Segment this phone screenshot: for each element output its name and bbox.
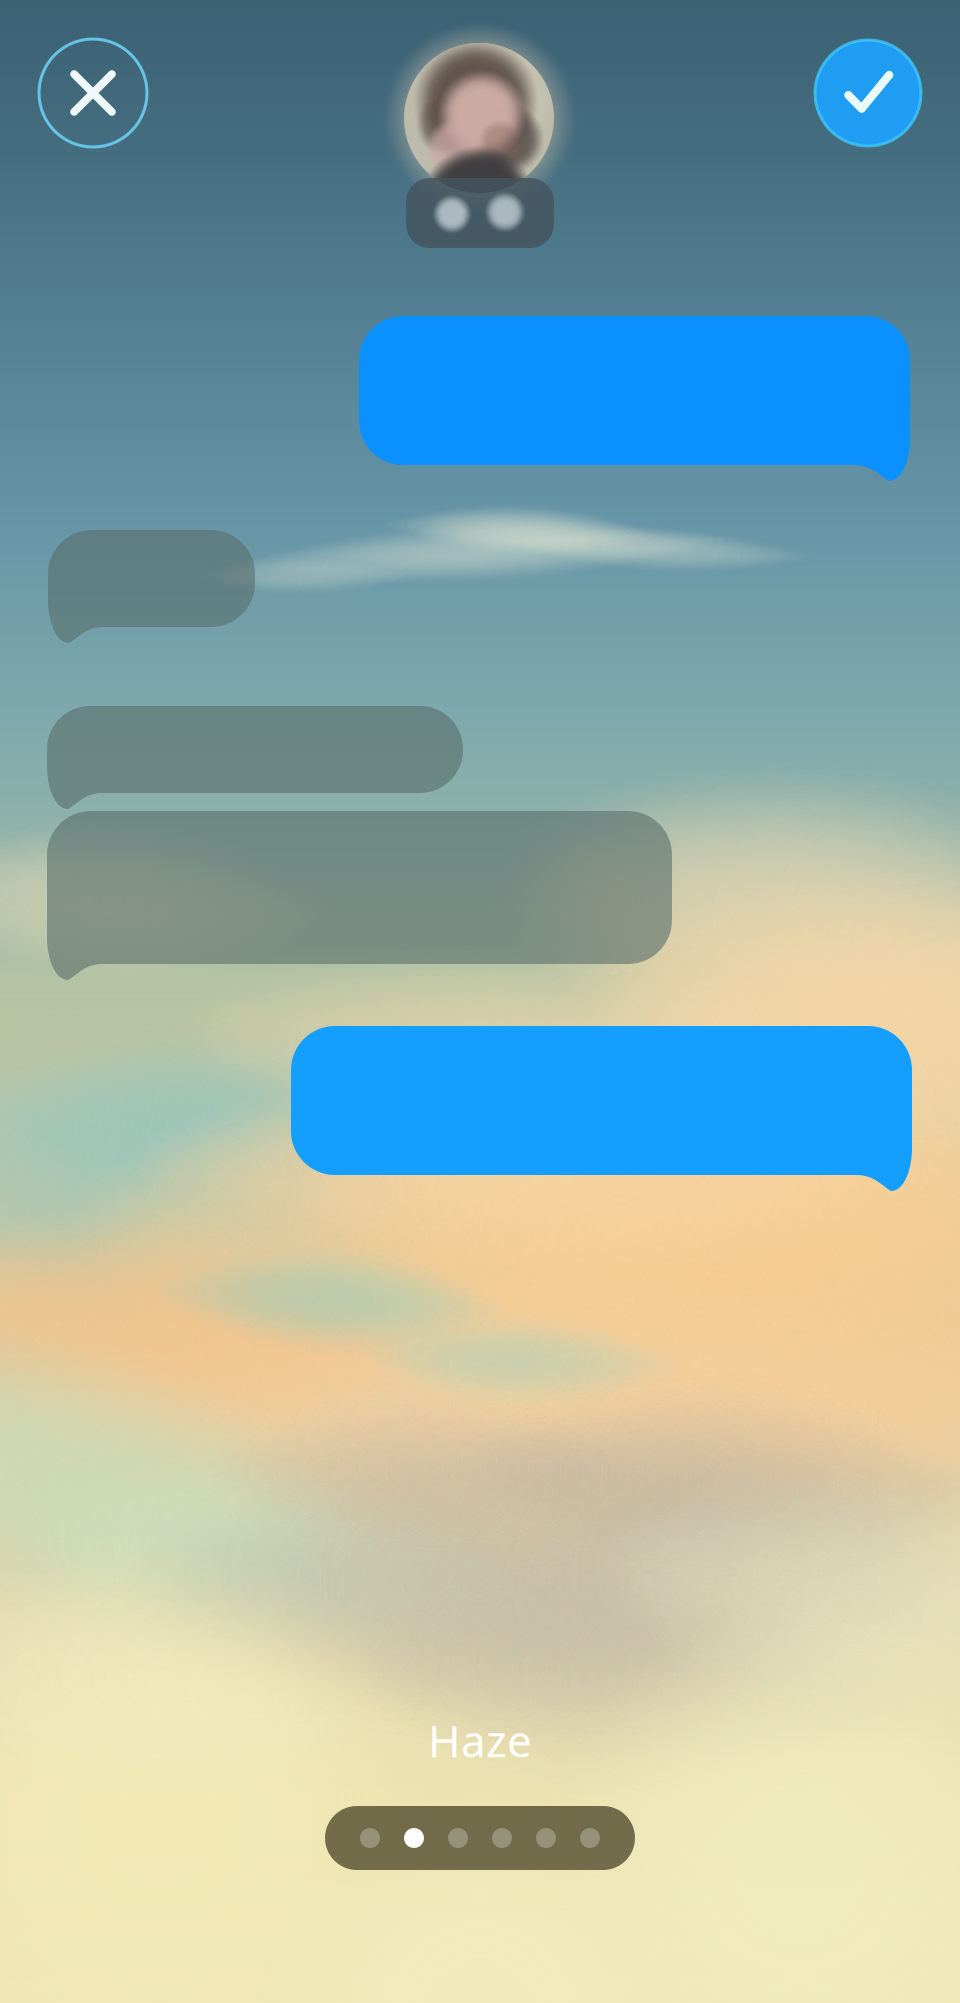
staticText: Haze	[428, 1711, 532, 1769]
button[interactable]: Cancel	[39, 39, 147, 147]
button[interactable]: Done	[815, 40, 921, 146]
